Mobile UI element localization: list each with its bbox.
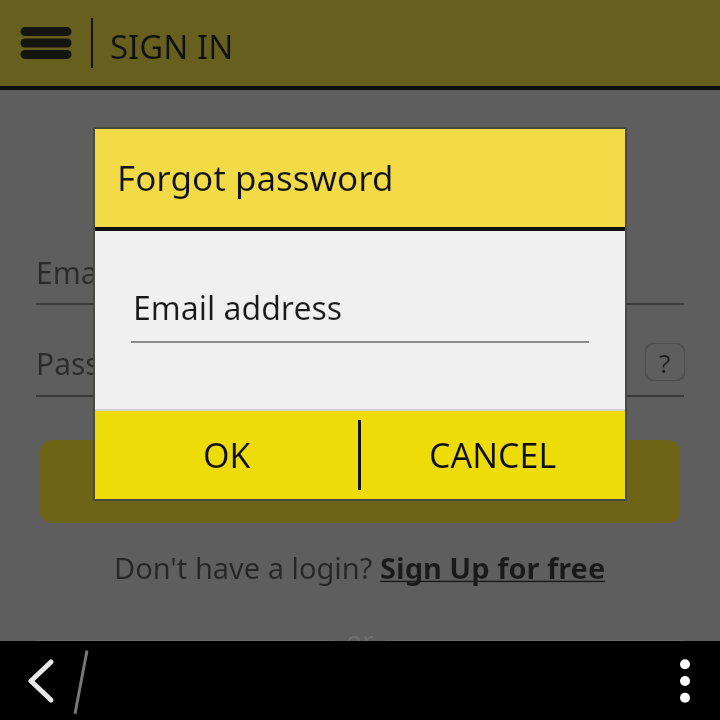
staticText: Don't have a login?	[114, 548, 380, 587]
button[interactable]: Sign Up for free	[380, 548, 606, 587]
staticText: SIGN IN	[110, 24, 234, 69]
staticText: Email address	[133, 286, 343, 330]
button[interactable]: Menu	[10, 0, 82, 86]
button[interactable]	[40, 440, 680, 523]
staticText: Email	[36, 252, 114, 293]
staticText: CANCEL	[429, 432, 557, 478]
staticText: Sign Up for free	[380, 548, 606, 587]
staticText: Forgot password	[117, 154, 394, 202]
button[interactable]: OK	[95, 411, 358, 499]
button[interactable]: More options	[650, 641, 720, 720]
button[interactable]: CANCEL	[361, 411, 625, 499]
staticText: OK	[203, 432, 251, 478]
staticText: Password	[36, 343, 172, 384]
button[interactable]: Help	[645, 343, 685, 381]
staticText: or	[346, 622, 374, 659]
staticText: ?	[659, 345, 671, 380]
button[interactable]: Back	[8, 641, 72, 720]
